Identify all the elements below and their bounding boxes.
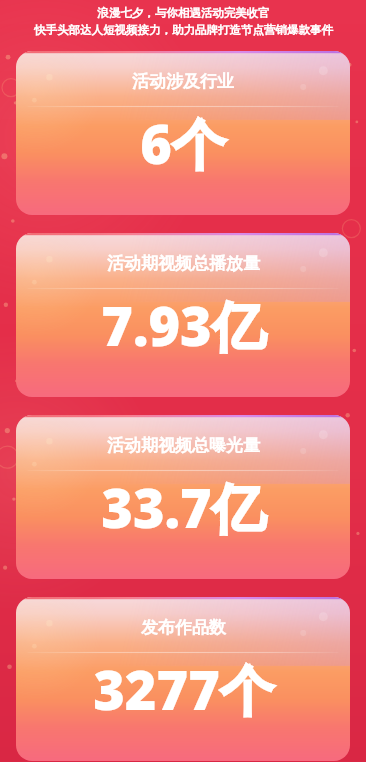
staticText: 快手头部达人短视频接力，助力品牌打造节点营销爆款事件 xyxy=(34,23,333,37)
staticText: 活动期视频总播放量 xyxy=(107,253,260,274)
staticText: 33.7亿 xyxy=(101,470,266,544)
button[interactable]: 发布作品数 xyxy=(16,597,350,761)
staticText: 活动期视频总曝光量 xyxy=(107,435,260,456)
button[interactable]: 活动期视频总曝光量 xyxy=(16,415,350,579)
staticText: 活动涉及行业 xyxy=(132,71,234,92)
staticText: 浪漫七夕，与你相遇活动完美收官 xyxy=(97,6,270,20)
staticText: 7.93亿 xyxy=(101,288,266,362)
button[interactable]: 活动涉及行业 xyxy=(16,51,350,215)
staticText: 3277个 xyxy=(93,652,274,726)
button[interactable]: 活动期视频总播放量 xyxy=(16,233,350,397)
staticText: 发布作品数 xyxy=(141,617,226,638)
staticText: 6个 xyxy=(140,106,226,180)
